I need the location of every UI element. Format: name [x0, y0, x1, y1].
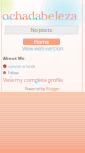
button[interactable]: View my complete profile [3, 76, 63, 84]
staticText: No posts [30, 26, 52, 34]
button[interactable]: Home [23, 38, 60, 45]
button[interactable]: Follow [7, 70, 18, 75]
staticText: ochadabeleza [2, 8, 77, 23]
staticText: Powered by [25, 86, 45, 91]
button[interactable]: View web version [0, 46, 85, 51]
staticText: Home [34, 38, 49, 45]
staticText: Follow [7, 70, 18, 75]
button[interactable]: Blogger [46, 86, 60, 91]
staticText: View my complete profile [3, 76, 63, 84]
staticText: Blogger [46, 86, 60, 91]
staticText: sanviek arlanda [8, 63, 35, 69]
staticText: View web version [22, 45, 63, 52]
staticText: About Me [3, 55, 24, 61]
